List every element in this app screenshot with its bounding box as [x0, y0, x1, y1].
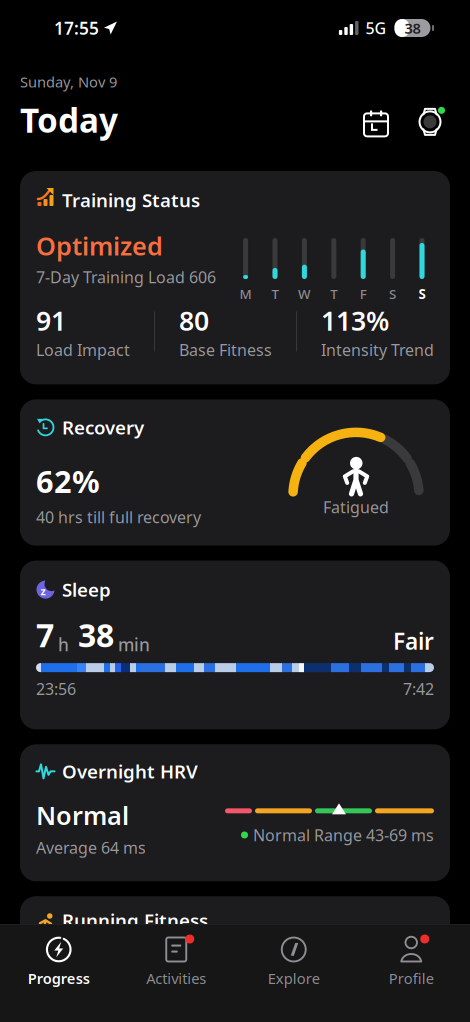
staticText: Fatigued	[323, 496, 389, 518]
staticText: T	[330, 285, 337, 303]
staticText: W	[298, 285, 311, 303]
staticText: Sleep	[62, 577, 111, 602]
staticText: Progress	[28, 968, 90, 988]
staticText: 7-Day Training Load 606	[36, 266, 216, 288]
button[interactable]: Profile	[352, 924, 470, 988]
staticText: Base Fitness	[179, 339, 272, 360]
staticText: 7	[36, 614, 54, 656]
staticText: 38	[404, 18, 420, 38]
staticText: min	[118, 633, 150, 656]
button[interactable]: Activities	[117, 924, 235, 988]
staticText: S	[389, 285, 396, 303]
staticText: Recovery	[62, 415, 144, 440]
staticText: Profile	[389, 968, 434, 988]
staticText: T	[271, 285, 278, 303]
staticText: Optimized	[36, 229, 163, 262]
staticText: Training Status	[62, 188, 200, 212]
button[interactable]: Calendar	[356, 102, 396, 142]
staticText: 91	[36, 303, 66, 338]
staticText: Average 64 ms	[36, 837, 146, 858]
staticText: Sunday, Nov 9	[20, 72, 117, 92]
staticText: 80	[179, 303, 209, 338]
staticText: 113%	[321, 303, 389, 338]
staticText: Normal	[36, 798, 129, 832]
button[interactable]: Paired Watch	[410, 102, 450, 142]
button[interactable]: Running Fitness	[20, 896, 450, 1016]
staticText: 38	[78, 614, 114, 656]
staticText: Overnight HRV	[62, 759, 198, 784]
staticText: Activities	[146, 968, 206, 988]
staticText: 5G	[365, 17, 386, 39]
staticText: 23:56	[36, 678, 76, 699]
staticText: 7:42	[403, 678, 434, 699]
staticText: Explore	[268, 968, 320, 988]
button[interactable]: z	[20, 561, 450, 729]
staticText: 62%	[36, 461, 100, 501]
staticText: F	[360, 285, 367, 303]
staticText: M	[240, 285, 252, 303]
staticText: z	[40, 584, 45, 598]
staticText: Fair	[393, 626, 434, 656]
staticText: Intensity Trend	[321, 339, 434, 360]
staticText: S	[418, 285, 425, 303]
button[interactable]: Overnight HRV	[20, 744, 450, 881]
staticText: 17:55	[54, 16, 99, 39]
staticText: Running Fitness	[62, 908, 208, 933]
button[interactable]: Recovery	[20, 399, 450, 546]
button[interactable]: Explore	[235, 924, 352, 988]
staticText: Normal Range 43-69 ms	[253, 824, 434, 846]
staticText: Today	[20, 98, 118, 142]
button[interactable]: Training Status	[20, 171, 450, 384]
staticText: Load Impact	[36, 339, 130, 360]
button[interactable]: Progress	[0, 924, 117, 988]
staticText: h	[58, 633, 69, 656]
staticText: 40 hrs till full recovery	[36, 506, 201, 528]
